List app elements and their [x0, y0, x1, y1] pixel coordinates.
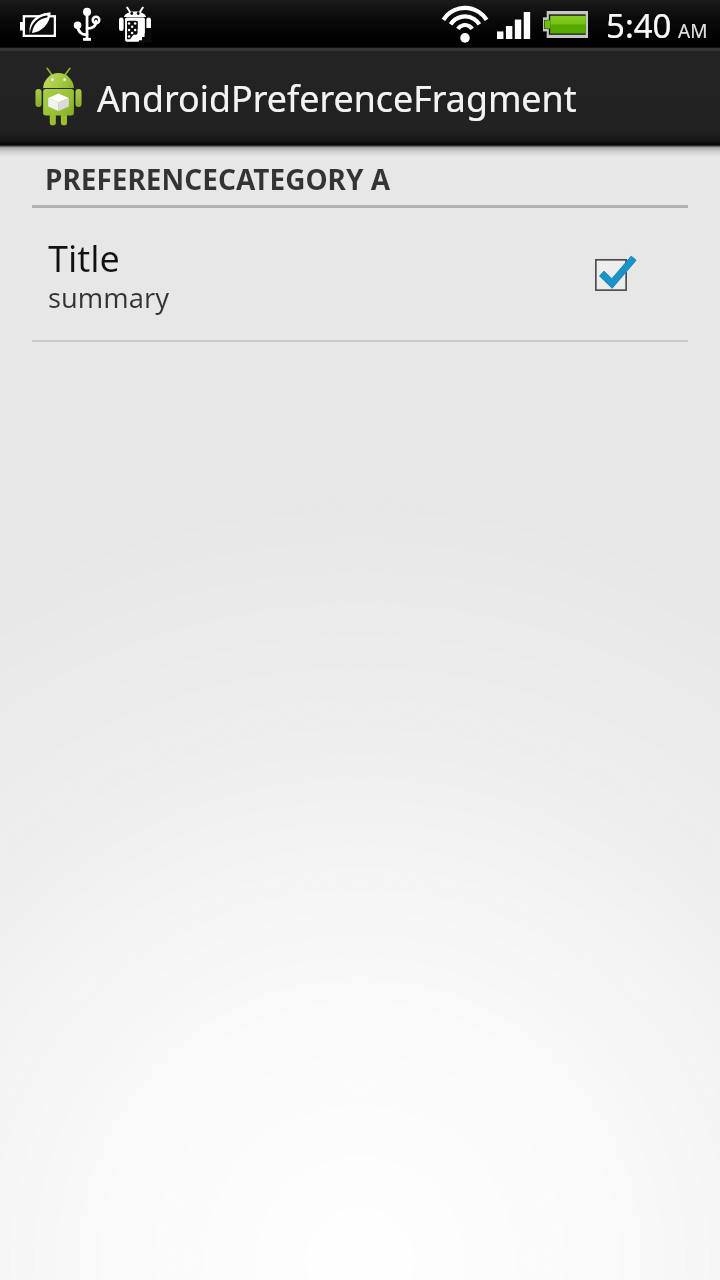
staticText: PREFERENCECATEGORY A [45, 160, 391, 198]
button[interactable]: Title checkbox, checked [573, 242, 657, 306]
other: Mobile signal [497, 12, 530, 39]
button[interactable]: App icon [0, 51, 720, 145]
staticText: summary [48, 279, 170, 316]
button[interactable]: Title [0, 208, 720, 340]
staticText: 5:40 [606, 3, 672, 48]
other: Power saver [20, 12, 56, 37]
staticText: AM [678, 18, 708, 44]
other: Wi-Fi signal [444, 11, 486, 39]
other: USB debugging enabled [119, 7, 151, 42]
other: App icon [32, 68, 85, 128]
other: Battery full [543, 11, 588, 38]
other: USB connected [73, 8, 99, 41]
staticText: Title [48, 234, 120, 283]
staticText: AndroidPreferenceFragment [97, 74, 577, 123]
